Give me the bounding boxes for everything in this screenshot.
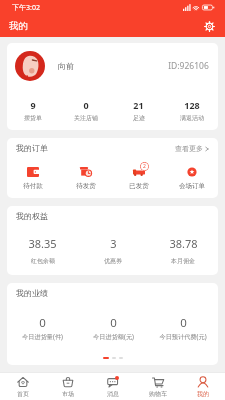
staticText: 0 — [39, 315, 46, 331]
button[interactable]: 向前 — [15, 43, 209, 89]
staticText: 128 — [184, 99, 200, 111]
button[interactable]: 市场 — [45, 373, 90, 400]
staticText: 查看更多 — [175, 144, 203, 153]
staticText: ID:926106 — [168, 60, 209, 72]
staticText: 待发货 — [76, 182, 96, 190]
button[interactable]: 9 — [7, 99, 59, 122]
staticText: 会场订单 — [179, 182, 205, 190]
staticText: 首页 — [17, 390, 29, 398]
staticText: 今日进货量(件) — [22, 332, 63, 340]
staticText: 红包余额 — [31, 257, 55, 265]
staticText: 我的 — [197, 390, 209, 398]
staticText: 我的订单 — [16, 143, 48, 153]
staticText: 我的 — [9, 20, 28, 32]
staticText: 2 — [143, 163, 146, 170]
staticText: 已发货 — [129, 182, 149, 190]
staticText: 3 — [110, 236, 117, 251]
staticText: 38.35 — [28, 236, 57, 251]
staticText: 关注店铺 — [74, 114, 98, 122]
button[interactable]: 查看更多 — [175, 144, 209, 153]
button[interactable]: 0 — [59, 99, 112, 122]
button[interactable]: 0 — [148, 315, 218, 340]
staticText: 本月佣金 — [171, 257, 195, 265]
button[interactable]: 0 — [78, 315, 148, 340]
staticText: 摆货单 — [24, 114, 42, 122]
staticText: 满返活动 — [180, 114, 204, 122]
button[interactable]: 会场订单 — [165, 166, 218, 190]
button[interactable]: 3 — [78, 236, 148, 265]
button[interactable]: 消息 — [90, 373, 135, 400]
button[interactable]: 首页 — [0, 373, 45, 400]
button[interactable]: 38.35 — [7, 236, 78, 265]
staticText: 0 — [110, 315, 117, 331]
staticText: 优惠券 — [104, 257, 122, 265]
staticText: 38.78 — [169, 236, 198, 251]
staticText: 待付款 — [23, 182, 43, 190]
staticText: 我的权益 — [16, 211, 48, 221]
staticText: 市场 — [62, 390, 74, 398]
button[interactable]: 2 — [112, 166, 165, 190]
button[interactable]: Settings — [200, 17, 218, 35]
button[interactable]: 38.78 — [148, 236, 218, 265]
button[interactable]: 128 — [165, 99, 218, 122]
button[interactable]: 我的 — [180, 373, 225, 400]
button[interactable]: 21 — [112, 99, 165, 122]
staticText: 0 — [180, 315, 187, 331]
staticText: 我的业绩 — [16, 288, 48, 298]
staticText: 向前 — [58, 61, 74, 71]
staticText: 下午3:02 — [12, 3, 40, 13]
staticText: 足迹 — [133, 114, 145, 122]
button[interactable]: 待发货 — [59, 166, 112, 190]
button[interactable]: 0 — [7, 315, 78, 340]
staticText: 消息 — [107, 390, 119, 398]
staticText: 9 — [30, 99, 36, 111]
staticText: 今日进货额(元) — [93, 332, 134, 340]
staticText: 购物车 — [149, 390, 167, 398]
staticText: 今日预计代费(元) — [159, 332, 207, 340]
staticText: 0 — [83, 99, 89, 111]
staticText: 21 — [133, 99, 144, 111]
button[interactable]: 待付款 — [7, 166, 59, 190]
button[interactable]: 购物车 — [135, 373, 180, 400]
